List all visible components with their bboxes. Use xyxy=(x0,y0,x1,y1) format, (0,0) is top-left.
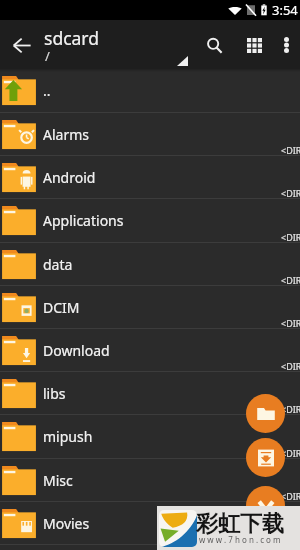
button[interactable]: Applications xyxy=(0,199,300,243)
button[interactable]: libs xyxy=(0,372,300,415)
staticText: mipush xyxy=(43,427,93,446)
staticText: DCIM xyxy=(43,298,80,317)
staticText: <DIR> xyxy=(281,447,300,459)
staticText: <DIR> xyxy=(281,274,300,286)
staticText: <DIR> xyxy=(281,490,300,502)
button[interactable]: mipush xyxy=(0,415,300,459)
staticText: Android xyxy=(43,168,96,187)
staticText: sdcard xyxy=(44,26,100,50)
staticText: <DIR> xyxy=(281,187,300,199)
button[interactable]: Close xyxy=(246,486,285,525)
button[interactable]: DCIM xyxy=(0,286,300,329)
button[interactable]: .. xyxy=(0,69,300,113)
staticText: .. xyxy=(43,81,51,100)
staticText: data xyxy=(43,255,73,274)
button[interactable]: data xyxy=(0,243,300,286)
button[interactable]: Search xyxy=(194,23,234,67)
button[interactable]: New folder xyxy=(246,394,285,433)
button[interactable]: Android xyxy=(0,156,300,199)
staticText: libs xyxy=(43,384,66,403)
button[interactable]: Download xyxy=(0,329,300,372)
staticText: <DIR> xyxy=(281,403,300,415)
staticText: 3:54 xyxy=(272,1,298,19)
button[interactable]: More options xyxy=(274,23,299,67)
staticText: Movies xyxy=(43,514,90,533)
button[interactable]: Alarms xyxy=(0,113,300,156)
staticText: <DIR> xyxy=(281,533,300,545)
staticText: Applications xyxy=(43,211,124,230)
staticText: 彩虹下载 xyxy=(196,510,284,538)
staticText: <DIR> xyxy=(281,360,300,372)
staticText: Misc xyxy=(43,471,73,490)
button[interactable]: Movies xyxy=(0,502,300,545)
staticText: / xyxy=(45,47,50,65)
staticText: <DIR> xyxy=(281,317,300,329)
staticText: w w w . 7 h o n . c o m xyxy=(199,534,281,545)
button[interactable]: Back xyxy=(0,23,43,67)
staticText: Download xyxy=(43,341,110,360)
button[interactable]: Extract xyxy=(246,438,285,477)
button[interactable]: Misc xyxy=(0,459,300,502)
staticText: <DIR> xyxy=(281,231,300,243)
staticText: <DIR> xyxy=(281,144,300,156)
button[interactable]: Grid view xyxy=(234,23,274,67)
staticText: Alarms xyxy=(43,125,89,144)
